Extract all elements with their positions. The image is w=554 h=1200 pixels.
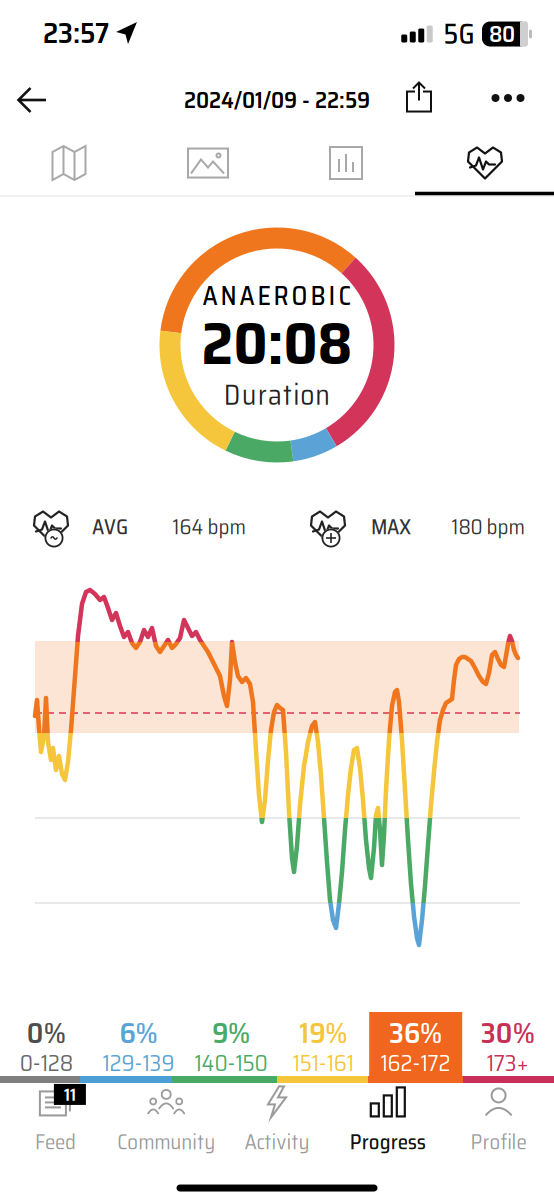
staticText: 6% <box>120 1010 158 1056</box>
staticText: Community <box>117 1125 215 1159</box>
staticText: MAX <box>371 510 411 544</box>
button[interactable]: 11 <box>0 1087 110 1157</box>
staticText: 30% <box>481 1010 535 1056</box>
staticText: 173+ <box>487 1045 529 1081</box>
staticText: Progress <box>350 1125 426 1159</box>
button[interactable]: Heart rate <box>455 138 515 188</box>
staticText: AVG <box>92 510 128 544</box>
button[interactable]: Share <box>399 77 439 117</box>
button[interactable]: More <box>486 83 530 113</box>
staticText: 129-139 <box>103 1045 175 1081</box>
staticText: 0-128 <box>20 1045 73 1081</box>
staticText: 162-172 <box>380 1045 450 1081</box>
staticText: 20:08 <box>201 296 352 390</box>
button[interactable]: Back <box>10 78 54 122</box>
staticText: 140-150 <box>194 1045 267 1081</box>
staticText: 11 <box>64 1080 76 1109</box>
staticText: Duration <box>224 373 330 417</box>
staticText: 5G <box>443 12 474 56</box>
button[interactable]: Photos <box>178 138 238 188</box>
staticText: Activity <box>244 1125 309 1159</box>
button[interactable]: Community <box>111 1087 221 1157</box>
button[interactable]: Charts <box>316 138 376 188</box>
staticText: 19% <box>299 1010 347 1056</box>
staticText: 9% <box>212 1010 250 1056</box>
staticText: Feed <box>35 1125 76 1159</box>
staticText: ANAEROBIC <box>202 275 351 316</box>
button[interactable]: Activity <box>222 1087 332 1157</box>
staticText: 0% <box>27 1010 66 1056</box>
staticText: 180 bpm <box>451 510 524 544</box>
button[interactable]: Map <box>39 138 99 188</box>
staticText: 23:57 <box>43 10 109 56</box>
staticText: Profile <box>471 1125 527 1159</box>
staticText: 151-161 <box>293 1045 354 1081</box>
button[interactable]: Progress <box>333 1087 443 1157</box>
staticText: 164 bpm <box>172 510 245 544</box>
staticText: 2024/01/09 - 22:59 <box>184 82 370 118</box>
staticText: 36% <box>389 1010 442 1056</box>
staticText: 80 <box>489 16 515 52</box>
button[interactable]: Profile <box>444 1087 554 1157</box>
